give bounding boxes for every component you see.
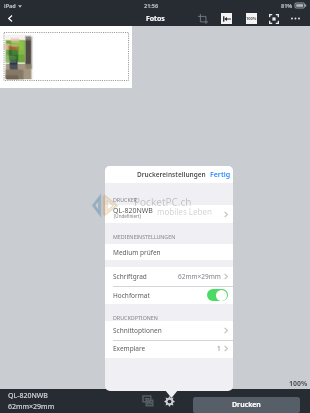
staticText: 81%: [281, 2, 293, 9]
staticText: 100%: [289, 379, 308, 389]
button[interactable]: Hochformat: [105, 286, 233, 304]
button[interactable]: [207, 289, 228, 301]
button[interactable]: Fit to screen: [266, 11, 282, 26]
staticText: 21:56: [144, 2, 159, 9]
button[interactable]: Drucken: [193, 397, 300, 413]
staticText: Schriftgrad: [113, 272, 147, 281]
staticText: 62mm×29mm: [178, 272, 221, 281]
staticText: Fertig: [210, 170, 231, 180]
button[interactable]: Printer settings: [162, 394, 176, 408]
staticText: 100%: [246, 16, 257, 21]
button[interactable]: Label layout: [141, 394, 155, 408]
staticText: Druckereinstellungen: [137, 170, 206, 179]
button[interactable]: Zoom to 100 percent: [243, 11, 259, 26]
button[interactable]: Schriftgrad: [105, 267, 233, 286]
staticText: QL-820NWB: [8, 391, 48, 401]
staticText: Exemplare: [113, 344, 146, 353]
staticText: mobiles Leben: [157, 206, 212, 217]
button[interactable]: Align left: [218, 11, 234, 26]
button[interactable]: Fertig: [210, 170, 231, 180]
button[interactable]: Back: [2, 11, 18, 26]
button[interactable]: Exemplare: [105, 340, 233, 357]
staticText: (Undefiniert): [114, 213, 141, 219]
staticText: Fotos: [146, 14, 165, 24]
staticText: 1: [217, 344, 221, 353]
staticText: MEDIENEINSTELLUNGEN: [113, 233, 176, 240]
staticText: DRUCKER: [113, 196, 137, 203]
button[interactable]: QL-820NWB: [105, 205, 233, 223]
staticText: Drucken: [232, 400, 261, 410]
staticText: 62mm×29mm: [8, 402, 55, 412]
button[interactable]: More options: [287, 11, 303, 26]
staticText: DRUCKOPTIONEN: [113, 314, 158, 321]
button[interactable]: Medium prüfen: [105, 244, 233, 260]
staticText: PocketPC.ch: [134, 195, 192, 209]
button[interactable]: Crop: [195, 11, 211, 26]
staticText: iPad: [4, 2, 16, 9]
staticText: Schnittoptionen: [113, 326, 162, 335]
button[interactable]: Schnittoptionen: [105, 321, 233, 340]
staticText: Medium prüfen: [113, 248, 161, 257]
staticText: Hochformat: [113, 291, 150, 300]
staticText: QL-820NWB: [113, 206, 153, 216]
